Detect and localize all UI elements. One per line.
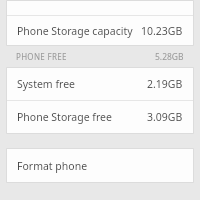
button[interactable]: System free — [7, 68, 193, 100]
staticText: 5.28GB — [155, 51, 184, 63]
button[interactable]: Format phone — [7, 149, 193, 182]
staticText: 10.23GB — [141, 24, 183, 38]
staticText: Format phone — [17, 159, 183, 173]
staticText: Phone Storage free — [17, 110, 147, 124]
button[interactable]: Phone Storage free — [7, 101, 193, 133]
staticText: Phone Storage capacity — [17, 24, 141, 38]
staticText: System free — [17, 77, 147, 91]
staticText: 3.09GB — [147, 110, 183, 124]
staticText: 2.19GB — [147, 77, 183, 91]
button[interactable]: Phone Storage capacity — [7, 16, 193, 45]
staticText: PHONE FREE — [16, 51, 155, 62]
